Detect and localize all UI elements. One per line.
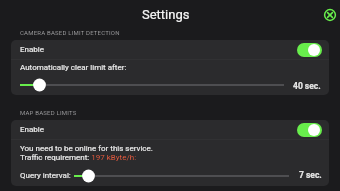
- button[interactable]: Enable: [297, 43, 322, 57]
- button[interactable]: Adjust value: [74, 169, 289, 183]
- staticText: Settings: [142, 7, 190, 22]
- staticText: 40 sec.: [293, 81, 321, 91]
- staticText: Automatically clear limit after:: [20, 63, 127, 72]
- staticText: Query interval:: [20, 171, 71, 180]
- staticText: MAP BASED LIMITS: [20, 109, 77, 116]
- button[interactable]: Adjust value: [20, 78, 284, 92]
- staticText: Traffic requirement: 197 kByte/h:: [20, 153, 137, 162]
- staticText: 7 sec.: [299, 170, 322, 180]
- button[interactable]: Enable: [11, 40, 329, 59]
- button[interactable]: Close: [320, 5, 340, 25]
- staticText: You need to be online for this service.: [20, 144, 153, 153]
- staticText: CAMERA BASED LIMIT DETECTION: [20, 29, 120, 36]
- button[interactable]: Enable: [11, 120, 329, 139]
- staticText: Enable: [20, 125, 44, 134]
- button[interactable]: Enable: [297, 123, 322, 137]
- staticText: Enable: [20, 45, 44, 54]
